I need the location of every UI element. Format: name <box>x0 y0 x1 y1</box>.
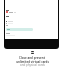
button[interactable]: Card <box>31 51 34 54</box>
staticText: Close and prevent <box>19 56 45 60</box>
button[interactable] <box>6 11 59 13</box>
button[interactable] <box>6 28 33 31</box>
staticText: unlimited virtual cards <box>16 60 49 64</box>
staticText: and physical cards <box>20 63 45 67</box>
